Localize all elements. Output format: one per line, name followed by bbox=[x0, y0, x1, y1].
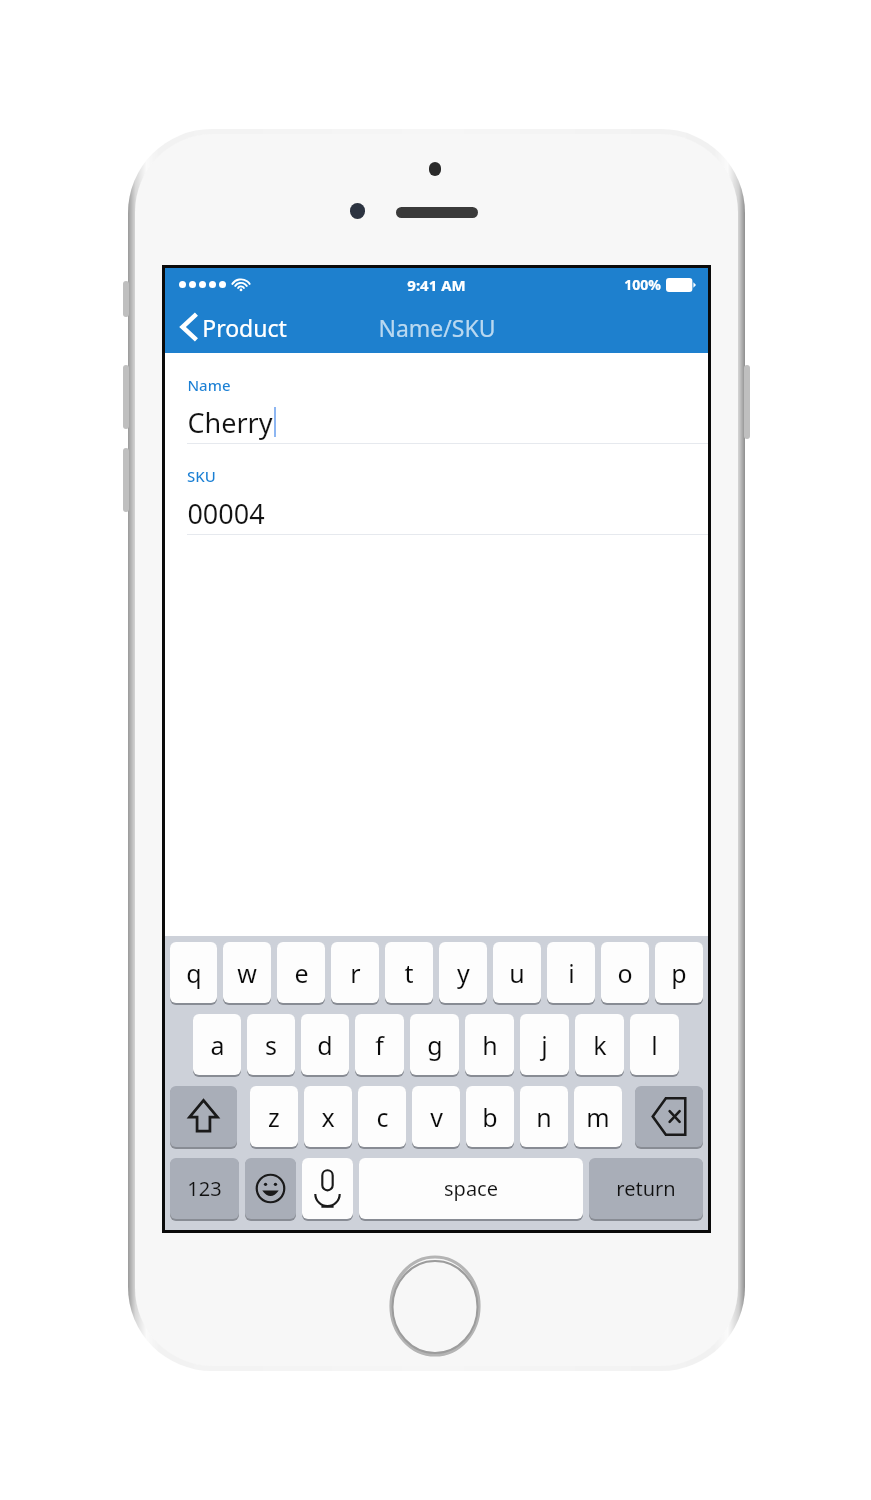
button[interactable]: Dictate bbox=[302, 1158, 353, 1221]
button[interactable]: a bbox=[193, 1014, 241, 1077]
button[interactable]: j bbox=[520, 1014, 569, 1077]
button[interactable]: r bbox=[331, 942, 379, 1005]
staticText: g bbox=[427, 1028, 443, 1062]
staticText: y bbox=[457, 956, 470, 990]
button[interactable]: n bbox=[520, 1086, 568, 1149]
staticText: z bbox=[268, 1100, 280, 1134]
staticText: r bbox=[350, 956, 361, 990]
staticText: a bbox=[210, 1028, 225, 1062]
button[interactable]: q bbox=[170, 942, 217, 1005]
button[interactable]: 123 bbox=[170, 1158, 239, 1221]
staticText: Name/SKU bbox=[378, 312, 496, 343]
button[interactable]: u bbox=[493, 942, 541, 1005]
staticText: e bbox=[294, 956, 309, 990]
button[interactable]: w bbox=[223, 942, 271, 1005]
staticText: t bbox=[404, 956, 414, 990]
staticText: h bbox=[482, 1028, 498, 1062]
button[interactable]: i bbox=[547, 942, 595, 1005]
button[interactable]: e bbox=[277, 942, 325, 1005]
button[interactable]: x bbox=[304, 1086, 352, 1149]
staticText: l bbox=[651, 1028, 658, 1062]
staticText: x bbox=[321, 1100, 335, 1134]
staticText: space bbox=[444, 1175, 498, 1202]
button[interactable]: k bbox=[575, 1014, 624, 1077]
button[interactable]: t bbox=[385, 942, 433, 1005]
button[interactable]: g bbox=[410, 1014, 459, 1077]
staticText: k bbox=[593, 1028, 607, 1062]
staticText: Cherry bbox=[187, 404, 273, 441]
staticText: return bbox=[616, 1175, 676, 1202]
staticText: b bbox=[482, 1100, 498, 1134]
staticText: w bbox=[237, 956, 257, 990]
staticText: n bbox=[536, 1100, 552, 1134]
staticText: o bbox=[617, 956, 633, 990]
staticText: Name bbox=[187, 375, 231, 395]
button[interactable]: s bbox=[247, 1014, 295, 1077]
button[interactable]: o bbox=[601, 942, 649, 1005]
staticText: m bbox=[586, 1100, 610, 1134]
button[interactable]: return bbox=[589, 1158, 703, 1221]
button[interactable]: Delete bbox=[635, 1086, 703, 1149]
button[interactable]: Shift bbox=[170, 1086, 237, 1149]
button[interactable]: h bbox=[465, 1014, 514, 1077]
staticText: SKU bbox=[187, 466, 216, 486]
staticText: d bbox=[317, 1028, 333, 1062]
staticText: p bbox=[671, 956, 687, 990]
button[interactable]: z bbox=[250, 1086, 298, 1149]
staticText: c bbox=[376, 1100, 389, 1134]
staticText: v bbox=[430, 1100, 443, 1134]
staticText: u bbox=[509, 956, 525, 990]
button[interactable]: b bbox=[466, 1086, 514, 1149]
button[interactable]: c bbox=[358, 1086, 406, 1149]
staticText: i bbox=[568, 956, 575, 990]
button[interactable]: p bbox=[655, 942, 703, 1005]
staticText: Product bbox=[202, 312, 287, 343]
staticText: 123 bbox=[187, 1175, 222, 1202]
button[interactable]: Product bbox=[165, 301, 299, 353]
staticText: s bbox=[265, 1028, 277, 1062]
button[interactable]: Emoji bbox=[245, 1158, 296, 1221]
staticText: q bbox=[186, 956, 202, 990]
button[interactable]: Name bbox=[165, 375, 708, 441]
other: Home bbox=[391, 1257, 479, 1355]
staticText: f bbox=[375, 1028, 384, 1062]
staticText: j bbox=[541, 1028, 548, 1062]
button[interactable]: y bbox=[439, 942, 487, 1005]
button[interactable]: d bbox=[301, 1014, 349, 1077]
button[interactable]: l bbox=[630, 1014, 679, 1077]
button[interactable]: space bbox=[359, 1158, 583, 1221]
button[interactable]: m bbox=[574, 1086, 622, 1149]
button[interactable]: v bbox=[412, 1086, 460, 1149]
staticText: 100% bbox=[624, 275, 661, 294]
staticText: 00004 bbox=[187, 495, 265, 532]
button[interactable]: SKU bbox=[165, 466, 708, 532]
staticText: 9:41 AM bbox=[407, 275, 466, 295]
button[interactable]: f bbox=[355, 1014, 404, 1077]
